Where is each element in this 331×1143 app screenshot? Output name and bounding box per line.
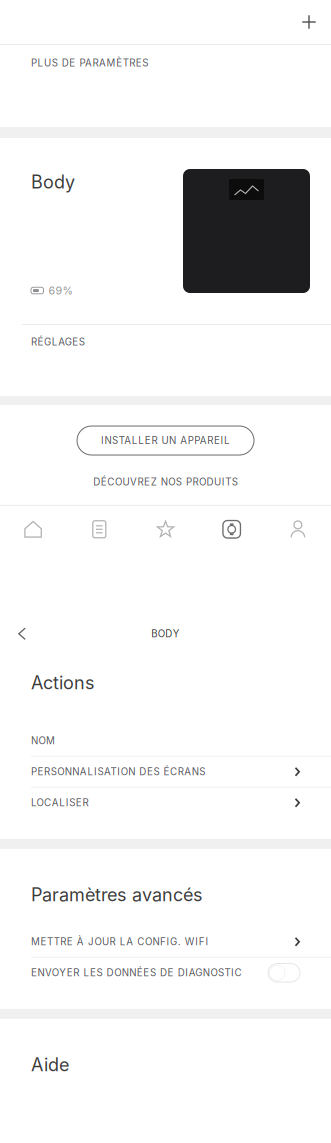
button[interactable]: LOCALISER	[0, 788, 331, 818]
staticText: RÉGLAGES	[31, 336, 85, 348]
staticText: METTRE À JOUR LA CONFIG. WIFI	[31, 936, 208, 948]
staticText: 69%	[48, 284, 72, 297]
staticText: LOCALISER	[31, 797, 88, 809]
staticText: Body	[31, 171, 75, 193]
staticText: Aide	[31, 1054, 69, 1076]
staticText: BODY	[151, 628, 180, 640]
button[interactable]: DÉCOUVREZ NOS PRODUITS	[88, 471, 243, 493]
button[interactable]: ENVOYER LES DONNÉES DE DIAGNOSTIC	[0, 958, 331, 988]
staticText: NOM	[31, 735, 55, 747]
button[interactable]: Add a device	[287, 0, 331, 44]
staticText: ENVOYER LES DONNÉES DE DIAGNOSTIC	[31, 967, 242, 979]
button[interactable]: Body	[0, 138, 331, 324]
button[interactable]: Programs	[132, 506, 199, 553]
staticText: DÉCOUVREZ NOS PRODUITS	[93, 476, 238, 488]
staticText: PERSONNALISATION DES ÉCRANS	[31, 766, 205, 778]
button[interactable]: Devices	[199, 506, 265, 553]
button[interactable]: METTRE À JOUR LA CONFIG. WIFI	[0, 927, 331, 957]
button[interactable]: NOM	[0, 726, 331, 756]
staticText: Actions	[31, 672, 95, 694]
staticText: Paramètres avancés	[31, 884, 203, 906]
button[interactable]: Back	[0, 613, 44, 655]
button[interactable]: Home	[0, 506, 66, 553]
staticText: PLUS DE PARAMÈTRES	[31, 57, 148, 69]
button[interactable]: INSTALLER UN APPAREIL	[77, 426, 254, 455]
button[interactable]: Profile	[265, 506, 331, 553]
button[interactable]: Measurements	[66, 506, 132, 553]
button[interactable]: PERSONNALISATION DES ÉCRANS	[0, 757, 331, 787]
staticText: INSTALLER UN APPAREIL	[101, 435, 230, 446]
